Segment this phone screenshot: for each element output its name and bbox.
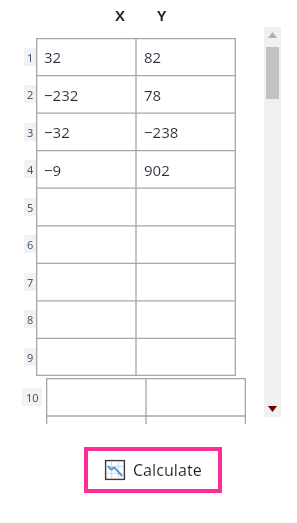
staticText: X [115, 5, 126, 25]
button[interactable]: 6 [24, 235, 37, 253]
button[interactable]: 2 [24, 85, 37, 103]
button[interactable]: Scroll down [264, 401, 281, 417]
button[interactable]: 1 [24, 48, 37, 66]
staticText: Y [157, 5, 167, 25]
button[interactable]: 9 [24, 348, 37, 366]
staticText: −232 [44, 85, 79, 105]
staticText: Calculate [133, 459, 202, 481]
staticText: −9 [44, 160, 62, 180]
staticText: 5 [27, 200, 34, 215]
staticText: 6 [27, 237, 34, 252]
button[interactable]: Scroll up [264, 27, 281, 43]
button[interactable]: −9 [44, 151, 132, 189]
button[interactable]: 78 [144, 76, 232, 114]
button[interactable]: −232 [44, 76, 132, 114]
button[interactable]: Calculate [88, 451, 218, 489]
staticText: −238 [144, 122, 179, 142]
staticText: 78 [144, 85, 162, 105]
staticText: 10 [26, 390, 39, 405]
button[interactable]: 3 [24, 123, 37, 141]
staticText: 4 [27, 162, 34, 177]
staticText: 82 [144, 47, 162, 67]
staticText: −32 [44, 122, 70, 142]
button[interactable]: 4 [24, 160, 37, 178]
button[interactable]: 10 [22, 388, 42, 406]
button[interactable]: −32 [44, 113, 132, 151]
staticText: 8 [27, 312, 34, 327]
staticText: 9 [27, 350, 34, 365]
staticText: 2 [27, 87, 34, 102]
button[interactable]: 7 [24, 273, 37, 291]
button[interactable]: −238 [144, 113, 232, 151]
button[interactable]: 82 [144, 38, 232, 76]
staticText: 902 [144, 160, 170, 180]
button[interactable]: 8 [24, 310, 37, 328]
staticText: 1 [27, 50, 34, 65]
button[interactable]: 5 [24, 198, 37, 216]
staticText: 3 [27, 125, 34, 140]
staticText: 7 [27, 275, 34, 290]
button[interactable]: 902 [144, 151, 232, 189]
button[interactable]: 32 [44, 38, 132, 76]
staticText: 32 [44, 47, 62, 67]
